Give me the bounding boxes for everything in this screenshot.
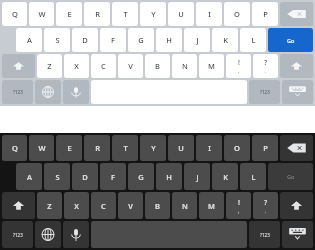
staticText: J <box>196 172 199 182</box>
button[interactable]: Shift <box>2 54 35 78</box>
button[interactable]: Shift <box>2 192 35 219</box>
staticText: T <box>123 143 128 153</box>
staticText: ?123 <box>13 232 23 238</box>
button[interactable]: Z <box>37 192 62 219</box>
staticText: Go <box>287 173 295 180</box>
button[interactable]: Go <box>268 163 313 190</box>
button[interactable]: I <box>196 2 222 26</box>
button[interactable]: C <box>91 192 116 219</box>
button[interactable]: Symbols <box>2 80 33 104</box>
button[interactable]: E <box>56 135 82 161</box>
button[interactable]: ! <box>226 54 251 78</box>
button[interactable]: G <box>128 163 154 190</box>
button[interactable]: Hide keyboard <box>282 80 313 104</box>
button[interactable]: ? <box>253 192 278 219</box>
button[interactable]: D <box>72 28 98 52</box>
button[interactable]: U <box>168 2 194 26</box>
button[interactable]: G <box>128 28 154 52</box>
button[interactable]: Change language <box>35 221 61 248</box>
button[interactable]: L <box>240 28 266 52</box>
button[interactable]: F <box>100 28 126 52</box>
staticText: X <box>74 201 79 211</box>
button[interactable]: W <box>29 2 54 26</box>
button[interactable]: F <box>100 163 126 190</box>
button[interactable]: Symbols <box>249 80 280 104</box>
button[interactable]: Z <box>37 54 62 78</box>
button[interactable]: Backspace <box>280 135 313 161</box>
button[interactable]: A <box>16 28 42 52</box>
button[interactable]: V <box>118 54 143 78</box>
staticText: Y <box>151 9 156 19</box>
button[interactable]: J <box>184 163 210 190</box>
button[interactable]: C <box>91 54 116 78</box>
button[interactable]: E <box>56 2 82 26</box>
staticText: T <box>123 9 128 19</box>
button[interactable]: Symbols <box>249 221 280 248</box>
button[interactable]: Backspace <box>280 2 313 26</box>
button[interactable]: Shift <box>280 54 313 78</box>
button[interactable]: Voice input <box>63 221 89 248</box>
button[interactable]: Y <box>140 135 166 161</box>
button[interactable]: Change language <box>35 80 61 104</box>
button[interactable]: S <box>44 163 70 190</box>
button[interactable]: W <box>29 135 54 161</box>
staticText: A <box>27 172 32 182</box>
staticText: B <box>155 201 160 211</box>
button[interactable]: T <box>112 2 138 26</box>
button[interactable]: Q <box>2 2 27 26</box>
staticText: B <box>155 61 160 71</box>
button[interactable]: M <box>199 192 224 219</box>
staticText: V <box>128 201 133 211</box>
button[interactable]: L <box>240 163 266 190</box>
button[interactable]: N <box>172 54 197 78</box>
button[interactable]: Q <box>2 135 27 161</box>
staticText: ?123 <box>260 232 270 238</box>
button[interactable]: Symbols <box>2 221 33 248</box>
button[interactable]: Go <box>268 28 313 52</box>
button[interactable]: R <box>84 2 110 26</box>
button[interactable]: H <box>156 28 182 52</box>
button[interactable]: K <box>212 28 238 52</box>
button[interactable]: X <box>64 192 89 219</box>
button[interactable]: B <box>145 54 170 78</box>
button[interactable]: S <box>44 28 70 52</box>
button[interactable]: X <box>64 54 89 78</box>
button[interactable]: ? <box>253 54 278 78</box>
button[interactable]: O <box>224 2 250 26</box>
staticText: C <box>101 61 106 71</box>
staticText: N <box>182 201 188 211</box>
button[interactable]: K <box>212 163 238 190</box>
button[interactable]: Hide keyboard <box>282 221 313 248</box>
button[interactable]: Y <box>140 2 166 26</box>
button[interactable]: V <box>118 192 143 219</box>
button[interactable]: J <box>184 28 210 52</box>
button[interactable]: D <box>72 163 98 190</box>
button[interactable]: M <box>199 54 224 78</box>
button[interactable]: R <box>84 135 110 161</box>
staticText: A <box>27 35 32 45</box>
button[interactable]: U <box>168 135 194 161</box>
staticText: C <box>101 201 106 211</box>
button[interactable]: I <box>196 135 222 161</box>
button[interactable]: T <box>112 135 138 161</box>
button[interactable]: Voice input <box>63 80 89 104</box>
button[interactable]: B <box>145 192 170 219</box>
staticText: S <box>55 172 60 182</box>
staticText: H <box>166 35 172 45</box>
button[interactable]: ! <box>226 192 251 219</box>
button[interactable]: O <box>224 135 250 161</box>
button[interactable]: N <box>172 192 197 219</box>
staticText: Q <box>12 9 18 19</box>
button[interactable]: Shift <box>280 192 313 219</box>
staticText: ?123 <box>13 89 23 95</box>
staticText: R <box>95 9 100 19</box>
button[interactable]: A <box>16 163 42 190</box>
staticText: L <box>251 172 256 182</box>
staticText: G <box>138 35 144 45</box>
button[interactable]: H <box>156 163 182 190</box>
button[interactable]: P <box>252 135 278 161</box>
staticText: Go <box>287 37 295 44</box>
button[interactable]: P <box>252 2 278 26</box>
